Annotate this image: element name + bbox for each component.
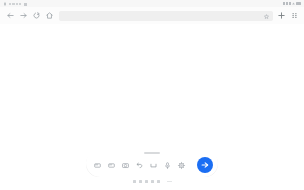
- button[interactable]: Capture: [120, 160, 131, 171]
- button[interactable]: New tab: [275, 8, 288, 23]
- button[interactable]: Crop: [106, 160, 117, 171]
- button[interactable]: Reload: [30, 8, 43, 23]
- button[interactable]: Home: [43, 8, 56, 23]
- button[interactable]: Redo: [148, 160, 159, 171]
- button[interactable]: Settings: [176, 160, 187, 171]
- button[interactable]: Select area: [92, 160, 103, 171]
- button[interactable]: Back: [4, 8, 17, 23]
- button[interactable]: Voice: [162, 160, 173, 171]
- button[interactable]: Bookmark: [264, 14, 269, 19]
- button[interactable]: Send: [197, 157, 213, 173]
- button[interactable]: Forward: [17, 8, 30, 23]
- button[interactable]: Menu: [288, 8, 301, 23]
- button[interactable]: Undo: [134, 160, 145, 171]
